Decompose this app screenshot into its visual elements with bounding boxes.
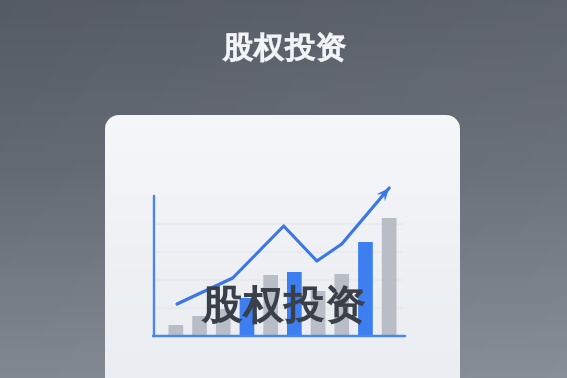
staticText: 股权投资 xyxy=(222,29,346,67)
button[interactable]: 股权投资 xyxy=(165,277,400,333)
button[interactable]: 股权投资 xyxy=(183,28,384,68)
staticText: 股权投资 xyxy=(201,280,365,330)
other: Growth chart xyxy=(145,153,415,303)
button[interactable]: Growth chart xyxy=(105,115,460,378)
